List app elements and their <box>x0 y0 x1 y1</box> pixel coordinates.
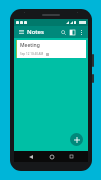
button[interactable]: Add note <box>70 133 83 146</box>
button[interactable]: Home <box>47 152 56 161</box>
button[interactable]: Meeting <box>16 40 86 58</box>
button[interactable]: Back <box>26 152 35 161</box>
button[interactable]: Change view <box>68 28 77 37</box>
button[interactable]: More options <box>77 28 85 36</box>
button[interactable]: Open navigation drawer <box>17 28 25 36</box>
button[interactable]: Search <box>59 28 68 37</box>
staticText: Sep 12 10:40 AM <box>20 52 44 56</box>
staticText: Notes <box>27 28 44 36</box>
staticText: Meeting <box>20 42 40 49</box>
button[interactable]: Recent apps <box>67 152 76 161</box>
